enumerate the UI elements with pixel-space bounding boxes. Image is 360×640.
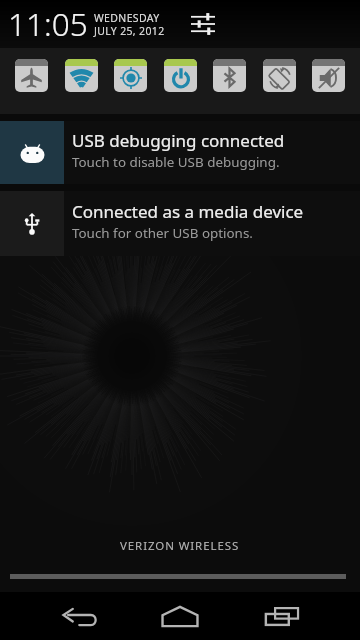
staticText: Touch to disable USB debugging. xyxy=(72,153,280,171)
button[interactable]: Recent apps xyxy=(242,592,322,640)
button[interactable]: Bluetooth xyxy=(213,59,246,92)
button[interactable]: Home xyxy=(140,592,220,640)
button[interactable]: Quick settings xyxy=(186,7,220,41)
button[interactable]: Back xyxy=(40,592,120,640)
staticText: VERIZON WIRELESS xyxy=(120,538,240,554)
button[interactable]: Battery saver xyxy=(164,59,197,92)
staticText: 11:05 xyxy=(8,2,88,45)
button[interactable]: Wi-Fi xyxy=(65,59,98,92)
button[interactable]: Auto rotate xyxy=(263,59,296,92)
staticText: USB debugging connected xyxy=(72,129,285,152)
staticText: Connected as a media device xyxy=(72,200,304,223)
button[interactable]: USB debugging connected xyxy=(0,121,360,184)
button[interactable]: Location xyxy=(114,59,147,92)
button[interactable]: Airplane mode xyxy=(15,59,48,92)
staticText: Touch for other USB options. xyxy=(72,224,253,242)
button[interactable]: Connected as a media device xyxy=(0,191,360,256)
staticText: JULY 25, 2012 xyxy=(94,24,165,38)
staticText: WEDNESDAY xyxy=(94,11,160,25)
button[interactable]: Mute xyxy=(312,59,345,92)
